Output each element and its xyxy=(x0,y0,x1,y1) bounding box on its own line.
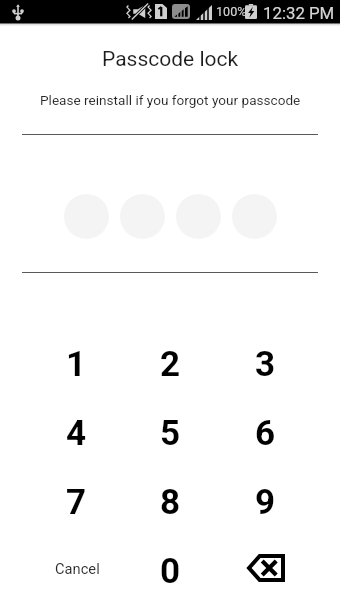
staticText: Please reinstall if you forgot your pass… xyxy=(40,92,301,108)
staticText: 0 xyxy=(160,551,181,592)
staticText: 100% xyxy=(216,4,247,19)
button[interactable]: 8 xyxy=(123,468,218,537)
button[interactable]: Backspace xyxy=(218,537,313,604)
button[interactable]: 5 xyxy=(123,399,218,468)
button[interactable]: 9 xyxy=(218,468,313,537)
staticText: Passcode lock xyxy=(102,47,239,71)
staticText: 8 xyxy=(160,482,181,523)
button[interactable]: 0 xyxy=(123,537,218,604)
button[interactable]: 1 xyxy=(29,330,123,399)
other: Passcode entry, 4 digits xyxy=(64,194,277,239)
button[interactable]: Cancel xyxy=(29,537,123,604)
staticText: Cancel xyxy=(55,560,100,577)
staticText: 7 xyxy=(66,482,87,523)
staticText: 4 xyxy=(66,413,87,454)
staticText: 2 xyxy=(160,344,181,385)
staticText: 12:32 PM xyxy=(263,3,335,23)
button[interactable]: 4 xyxy=(29,399,123,468)
staticText: 6 xyxy=(255,413,276,454)
button[interactable]: 2 xyxy=(123,330,218,399)
staticText: 3 xyxy=(255,344,276,385)
button[interactable]: 6 xyxy=(218,399,313,468)
staticText: 9 xyxy=(255,482,276,523)
staticText: 1 xyxy=(66,344,87,385)
button[interactable]: 7 xyxy=(29,468,123,537)
button[interactable]: 3 xyxy=(218,330,313,399)
staticText: 5 xyxy=(160,413,181,454)
